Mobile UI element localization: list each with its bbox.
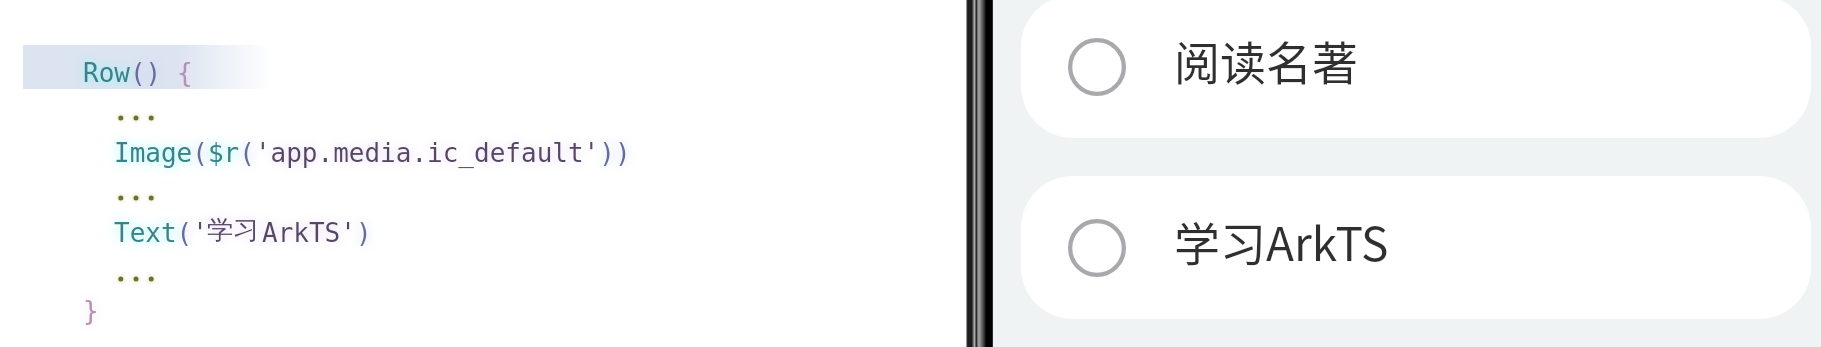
button[interactable]: Toggle task [1021, 0, 1811, 138]
button[interactable]: Toggle task [1021, 176, 1811, 319]
staticText: 学习ArkTS [1174, 208, 1389, 275]
staticText: Row() { [83, 58, 193, 88]
staticText: Text(' [114, 218, 208, 248]
staticText: 阅读名著 [1174, 27, 1358, 94]
staticText: } [83, 296, 99, 326]
button[interactable]: Toggle task [1068, 219, 1126, 277]
staticText: ArkTS') [262, 218, 372, 248]
staticText: Image($r('app.media.ic_default')) [114, 138, 631, 168]
button[interactable]: Toggle task [1068, 38, 1126, 96]
staticText: 学习 [207, 214, 259, 247]
